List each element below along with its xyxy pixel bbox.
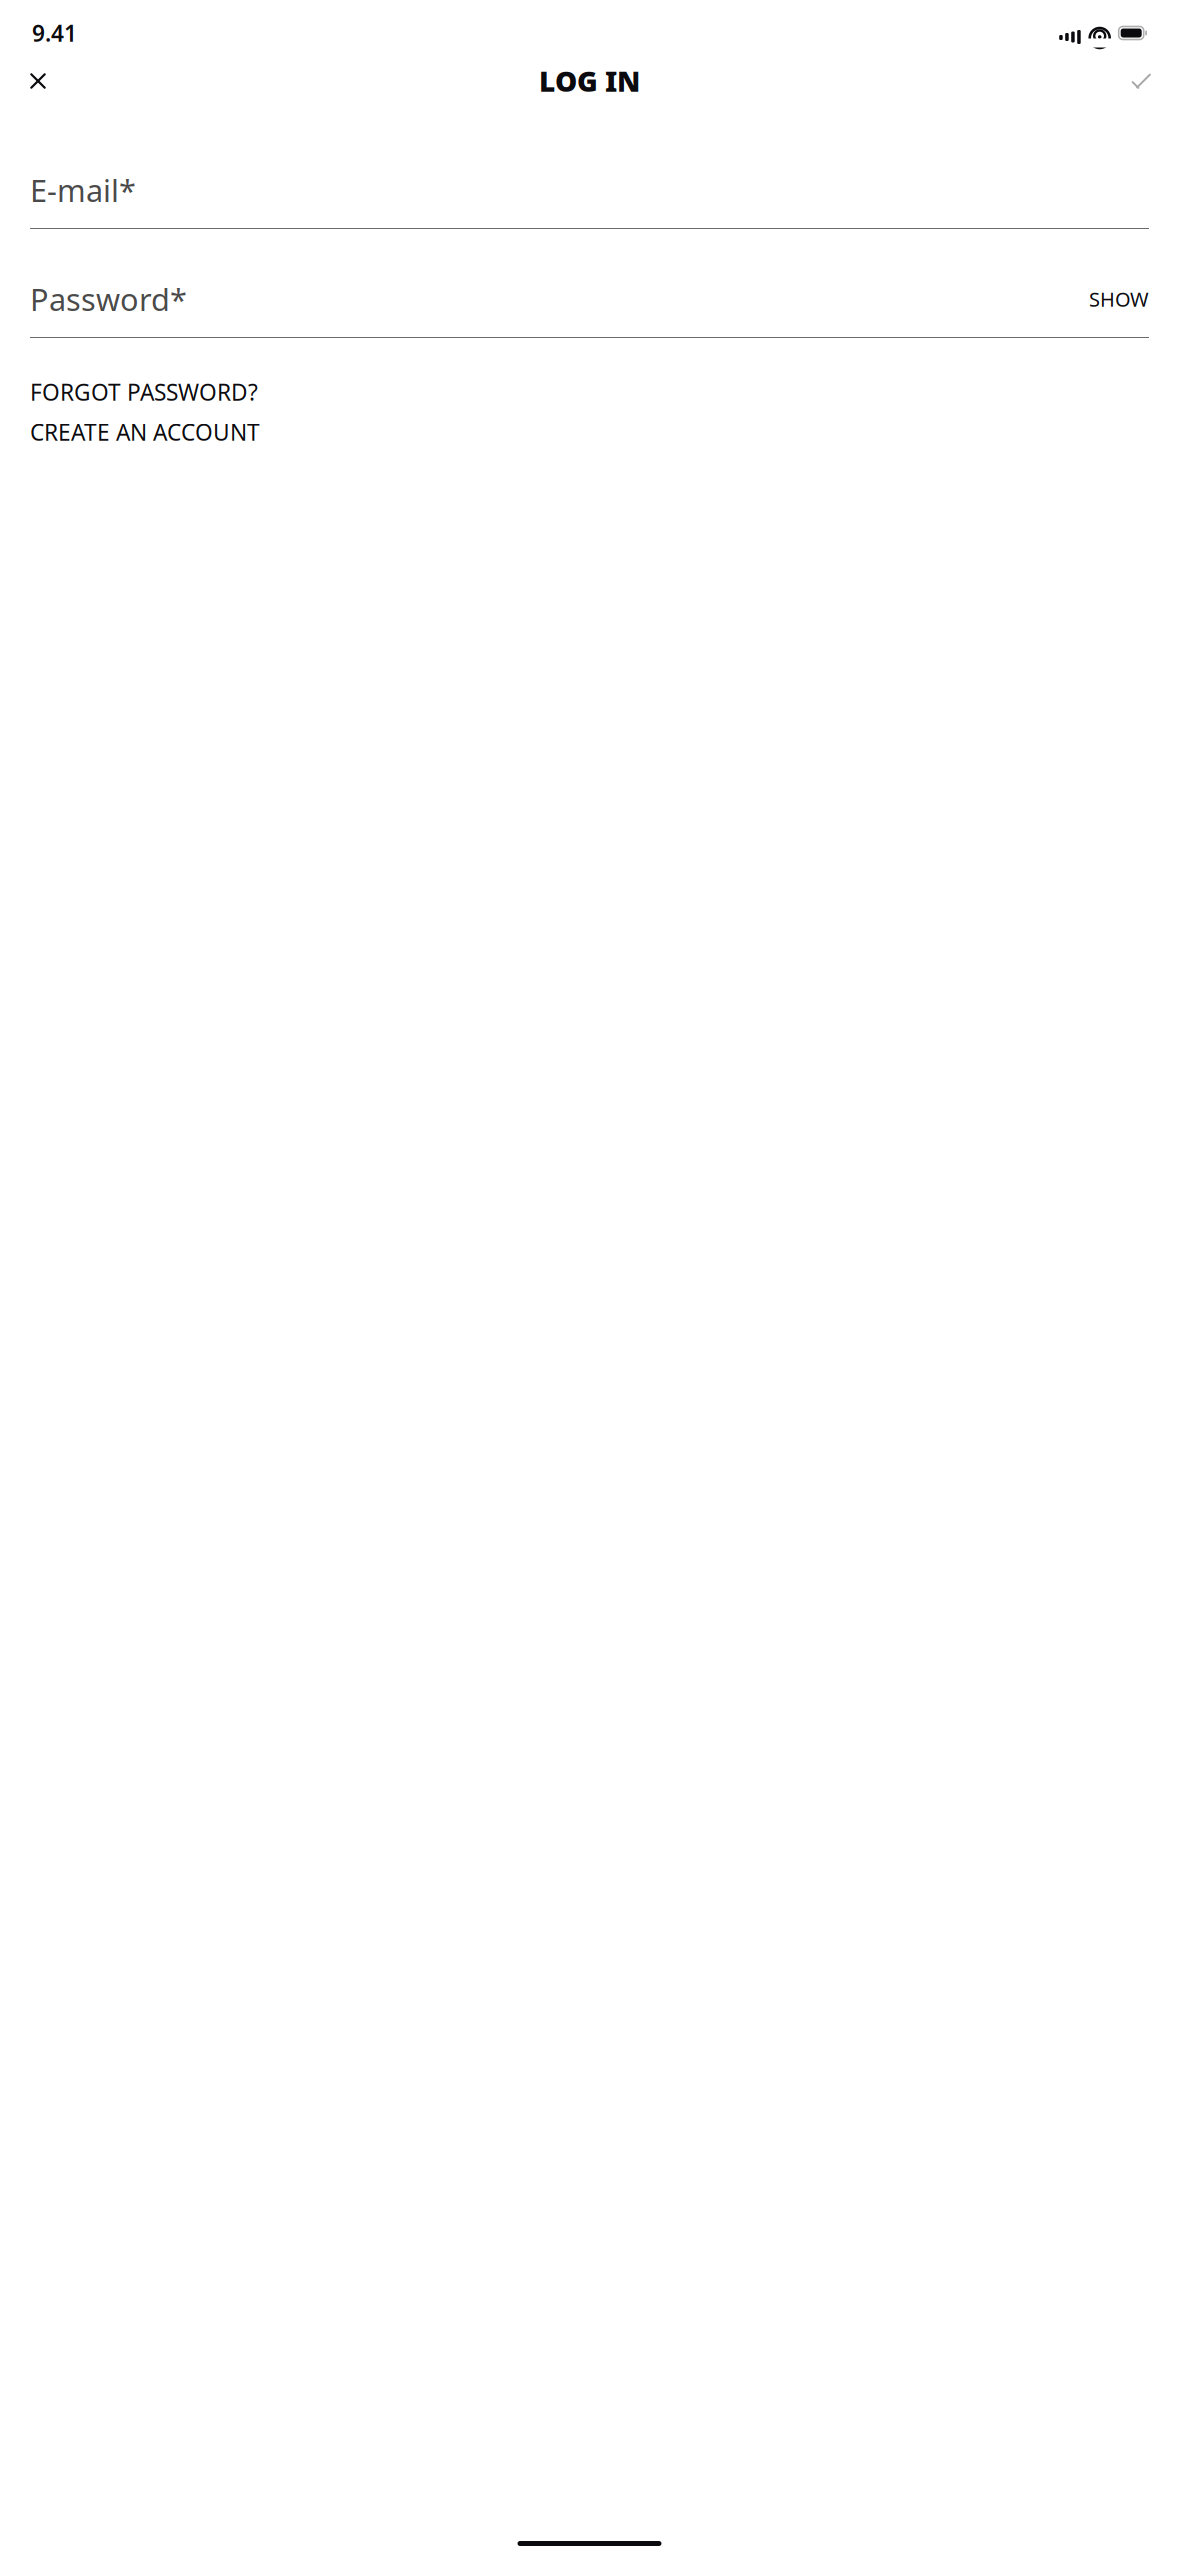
staticText: 9.41 — [32, 18, 77, 48]
staticText: E-mail* — [30, 170, 136, 210]
staticText: FORGOT PASSWORD? — [30, 377, 258, 407]
button[interactable]: Close — [12, 55, 64, 107]
staticText: CREATE AN ACCOUNT — [30, 417, 260, 447]
button[interactable]: SHOW — [1077, 280, 1149, 318]
staticText: Password* — [30, 279, 187, 319]
staticText: LOG IN — [539, 62, 640, 100]
button[interactable]: FORGOT PASSWORD? — [30, 372, 1149, 412]
button[interactable]: CREATE AN ACCOUNT — [30, 412, 1149, 452]
button[interactable]: Submit — [1115, 55, 1167, 107]
staticText: SHOW — [1089, 286, 1149, 312]
